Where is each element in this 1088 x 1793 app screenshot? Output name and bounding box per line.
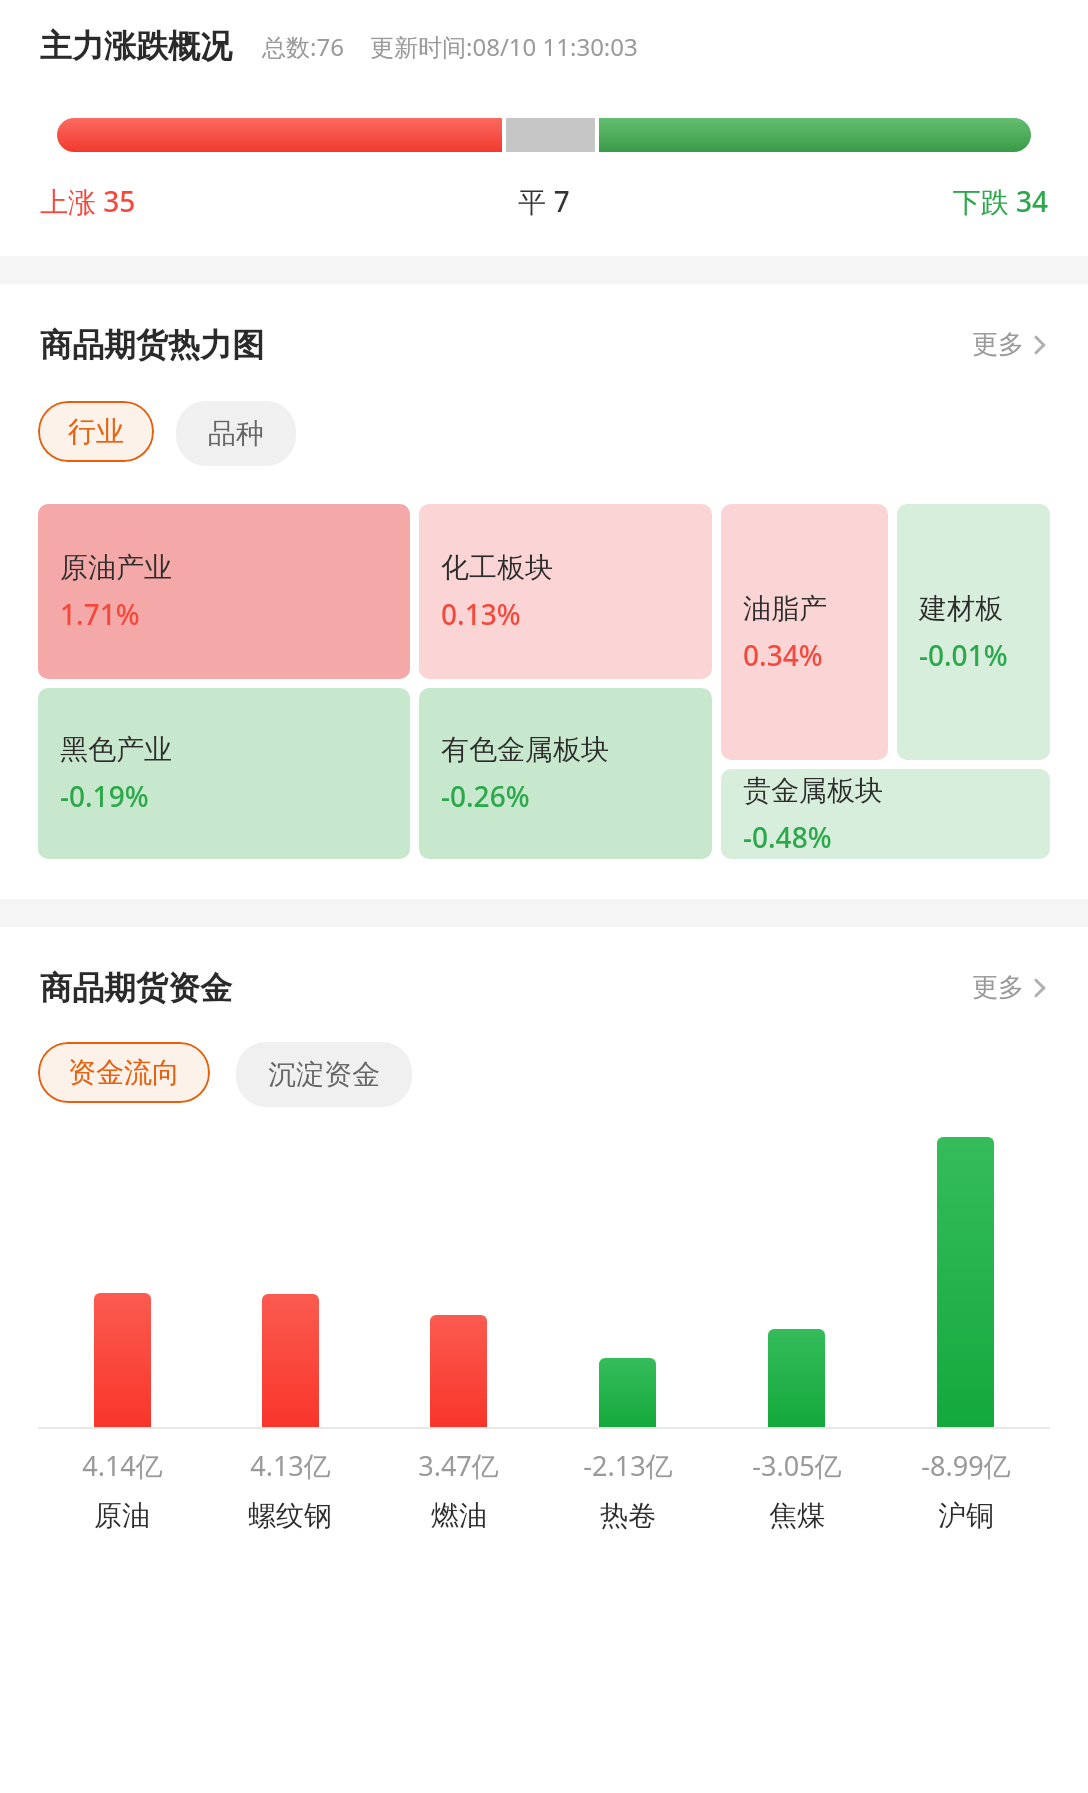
staticText: 黑色产业	[60, 732, 172, 767]
staticText: 油脂产	[743, 591, 827, 626]
staticText: -8.99亿	[921, 1447, 1011, 1484]
staticText: 热卷	[600, 1498, 656, 1533]
staticText: 品种	[208, 416, 264, 451]
staticText: 原油	[94, 1498, 150, 1533]
button[interactable]: 黑色产业	[38, 688, 410, 859]
button[interactable]: 资金流向	[38, 1042, 210, 1103]
button[interactable]: 化工板块	[419, 504, 712, 679]
button[interactable]: 更多	[966, 322, 1054, 367]
staticText: 平 7	[376, 182, 712, 220]
button[interactable]: 建材板	[897, 504, 1050, 760]
staticText: 商品期货资金	[40, 968, 232, 1008]
staticText: 贵金属板块	[743, 773, 883, 808]
staticText: 原油产业	[60, 550, 172, 585]
staticText: 4.14亿	[82, 1447, 163, 1484]
staticText: 焦煤	[769, 1498, 825, 1533]
staticText: 建材板	[919, 591, 1003, 626]
staticText: -3.05亿	[752, 1447, 842, 1484]
staticText: 更多	[972, 971, 1024, 1004]
staticText: 0.13%	[441, 595, 521, 633]
staticText: 螺纹钢	[248, 1498, 332, 1533]
button[interactable]: 有色金属板块	[419, 688, 712, 859]
staticText: 行业	[68, 414, 124, 449]
staticText: 总数:76	[262, 30, 344, 63]
staticText: 燃油	[431, 1498, 487, 1533]
staticText: 有色金属板块	[441, 732, 609, 767]
staticText: -0.01%	[919, 636, 1008, 674]
staticText: 资金流向	[68, 1055, 180, 1090]
staticText: 更多	[972, 328, 1024, 361]
staticText: 更新时间:08/10 11:30:03	[370, 30, 638, 63]
staticText: 化工板块	[441, 550, 553, 585]
staticText: 3.47亿	[418, 1447, 499, 1484]
staticText: 下跌 34	[712, 182, 1048, 220]
button[interactable]: 油脂产	[721, 504, 888, 760]
staticText: 沉淀资金	[268, 1057, 380, 1092]
staticText: 沪铜	[938, 1498, 994, 1533]
staticText: -0.48%	[743, 818, 832, 856]
staticText: 主力涨跌概况	[40, 26, 232, 66]
button[interactable]: 贵金属板块	[721, 769, 1050, 859]
button[interactable]: 品种	[176, 401, 296, 466]
staticText: 0.34%	[743, 636, 823, 674]
staticText: 上涨 35	[40, 182, 376, 220]
staticText: -0.26%	[441, 777, 530, 815]
button[interactable]: 行业	[38, 401, 154, 462]
staticText: -0.19%	[60, 777, 149, 815]
staticText: 4.13亿	[250, 1447, 331, 1484]
button[interactable]: 原油产业	[38, 504, 410, 679]
button[interactable]: 沉淀资金	[236, 1042, 412, 1107]
staticText: -2.13亿	[583, 1447, 673, 1484]
button[interactable]: 更多	[966, 965, 1054, 1010]
staticText: 1.71%	[60, 595, 140, 633]
staticText: 商品期货热力图	[40, 325, 264, 365]
